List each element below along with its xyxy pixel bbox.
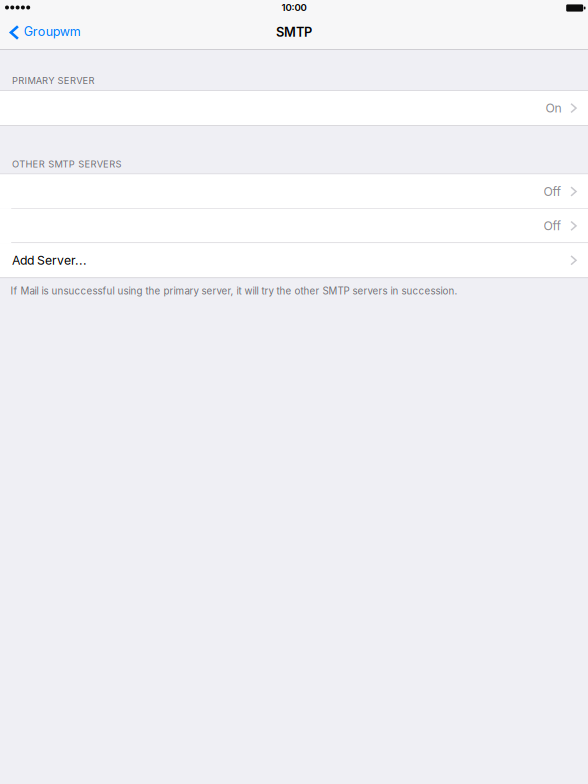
button[interactable]: SMTP server [0, 174, 588, 209]
button[interactable]: Add Server... [0, 243, 588, 277]
staticText: Groupwm [24, 24, 81, 39]
staticText: SMTP [276, 24, 312, 40]
staticText: OTHER SMTP SERVERS [12, 158, 121, 170]
staticText: On [545, 101, 561, 115]
staticText: If Mail is unsuccessful using the primar… [10, 285, 457, 297]
button[interactable]: Groupwm [0, 18, 89, 49]
staticText: Add Server... [12, 253, 87, 268]
staticText: Off [543, 218, 561, 233]
staticText: PRIMARY SERVER [12, 75, 95, 86]
staticText: 10:00 [281, 2, 306, 13]
button[interactable]: SMTP server [0, 209, 588, 243]
staticText: Off [543, 184, 561, 199]
button[interactable]: Primary server [0, 91, 588, 125]
